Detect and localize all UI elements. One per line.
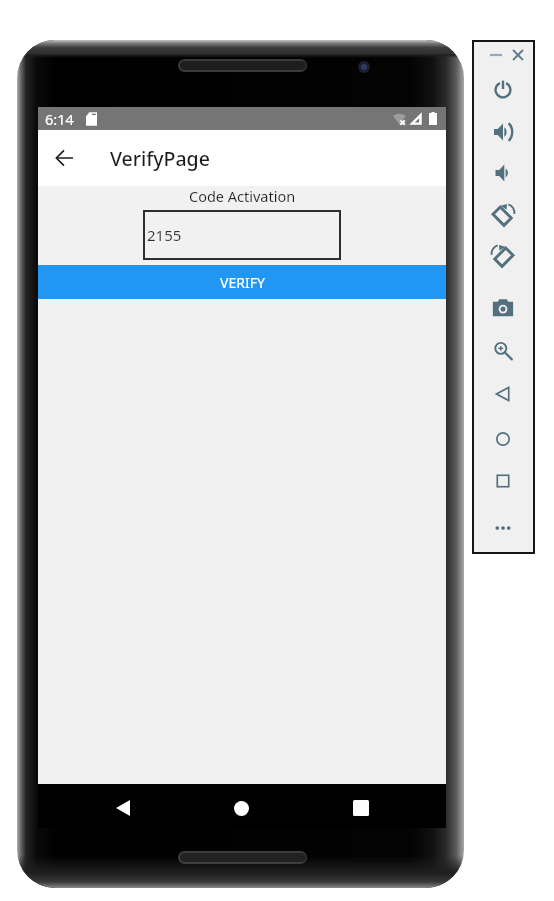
- button[interactable]: Recent apps: [473, 460, 533, 502]
- staticText: 6:14: [45, 109, 74, 129]
- button[interactable]: Recent apps: [301, 793, 420, 823]
- button[interactable]: Rotate left: [473, 193, 533, 235]
- button[interactable]: 2155: [143, 210, 341, 260]
- button[interactable]: More: [473, 507, 533, 549]
- button[interactable]: Back: [473, 373, 533, 415]
- button[interactable]: Home: [473, 418, 533, 460]
- button[interactable]: Volume up: [473, 111, 533, 153]
- staticText: VERIFY: [220, 273, 265, 292]
- button[interactable]: Rotate right: [473, 234, 533, 276]
- button[interactable]: Power: [473, 68, 533, 110]
- button[interactable]: Back: [64, 793, 182, 823]
- button[interactable]: Take screenshot: [473, 287, 533, 329]
- button[interactable]: VERIFY: [38, 265, 446, 299]
- staticText: VerifyPage: [110, 145, 210, 172]
- button[interactable]: Volume down: [473, 152, 533, 194]
- button[interactable]: Close: [507, 44, 529, 66]
- button[interactable]: Zoom: [473, 330, 533, 372]
- button[interactable]: Minimize: [485, 44, 507, 66]
- staticText: Code Activation: [189, 186, 296, 206]
- button[interactable]: Home: [182, 793, 301, 823]
- button[interactable]: Back: [38, 132, 90, 184]
- staticText: 2155: [147, 225, 182, 245]
